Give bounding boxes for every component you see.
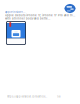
staticText: 1/8 [57, 95, 61, 98]
staticText: Apple debuts iPhone 17, iPhone 17 Pro an… [5, 14, 75, 17]
button[interactable]: appleinsider.com [5, 10, 25, 13]
button[interactable]: AppleInsider [64, 3, 76, 13]
staticText: appleinsider.com [5, 10, 25, 13]
staticText: https://appleinsider.com/articles/apple-… [7, 95, 47, 98]
staticText: with a thinner body and better cameras [5, 17, 50, 20]
